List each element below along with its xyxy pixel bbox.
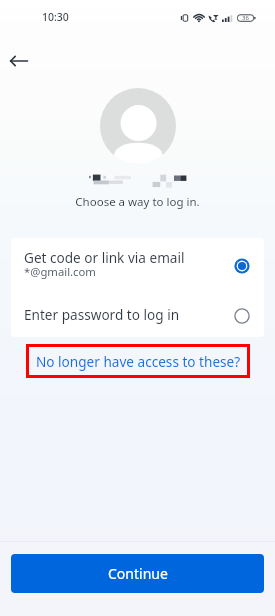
button[interactable]: Back [4, 47, 32, 75]
staticText: Choose a way to log in. [0, 194, 275, 210]
button[interactable]: Continue [11, 554, 264, 593]
staticText: Get code or link via email [24, 248, 185, 267]
button[interactable]: Get code or link via email [11, 238, 264, 294]
staticText: Continue [108, 564, 168, 583]
staticText: 36 [242, 14, 249, 22]
staticText: No longer have access to these? [36, 352, 241, 371]
button[interactable]: Enter password to log in [11, 294, 264, 337]
staticText: Enter password to log in [24, 305, 233, 324]
button[interactable]: No longer have access to these? [26, 344, 250, 378]
staticText: *@gmail.com [24, 264, 96, 279]
staticText: 10:30 [42, 10, 69, 24]
